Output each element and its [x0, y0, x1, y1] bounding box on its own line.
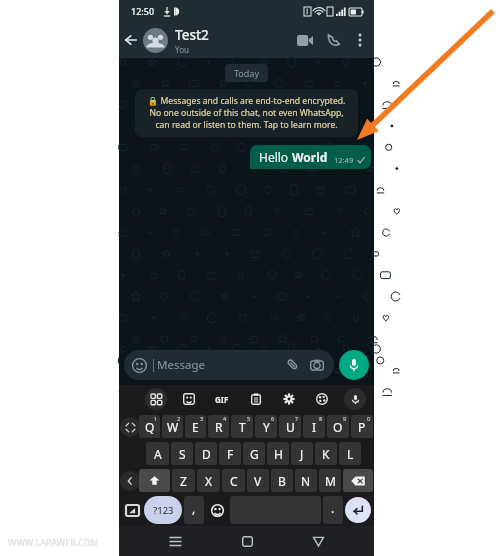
staticText: 3	[200, 415, 204, 422]
staticText: Y	[263, 419, 270, 435]
button[interactable]: I	[303, 415, 325, 438]
staticText: 9	[343, 415, 347, 422]
staticText: H	[274, 446, 283, 462]
button[interactable]: Enter	[345, 497, 371, 523]
staticText: D	[202, 446, 211, 462]
button[interactable]: U	[279, 415, 301, 438]
staticText: Test2	[175, 26, 209, 44]
staticText: J	[300, 446, 304, 462]
staticText: Today	[234, 67, 259, 79]
button[interactable]: Z	[172, 469, 195, 492]
button[interactable]: palette	[311, 388, 333, 410]
button[interactable]: Keyboard mode	[122, 500, 142, 520]
button[interactable]: Shift	[139, 469, 170, 492]
button[interactable]: C	[222, 469, 245, 492]
button[interactable]: X	[197, 469, 220, 492]
staticText: ?123	[153, 504, 174, 517]
button[interactable]: W	[162, 415, 183, 438]
staticText: I	[312, 419, 317, 435]
button[interactable]: Emoji	[206, 499, 228, 521]
staticText: 5	[247, 415, 251, 422]
button[interactable]: clip	[245, 388, 267, 410]
button[interactable]: gear	[278, 388, 300, 410]
staticText: 1	[154, 415, 158, 422]
staticText: GIF	[215, 394, 229, 405]
button[interactable]: grid	[145, 388, 167, 410]
button[interactable]: E	[185, 415, 206, 438]
button[interactable]: A	[146, 442, 169, 465]
button[interactable]: Delete	[343, 469, 373, 492]
button[interactable]: Message	[124, 350, 334, 380]
button[interactable]: Back	[119, 22, 143, 58]
button[interactable]: T	[231, 415, 253, 438]
button[interactable]: J	[291, 442, 313, 465]
staticText: 0	[367, 415, 371, 422]
staticText: R	[215, 419, 223, 435]
button[interactable]: ,	[184, 496, 204, 524]
staticText: B	[278, 473, 286, 489]
staticText: You	[175, 44, 189, 55]
button[interactable]: P	[351, 415, 373, 438]
staticText: L	[347, 446, 354, 462]
staticText: Message	[157, 357, 284, 373]
staticText: 2	[177, 415, 181, 422]
staticText: U	[286, 419, 295, 435]
button[interactable]: Back	[302, 526, 334, 556]
button[interactable]: mic	[344, 388, 366, 410]
staticText: N	[301, 473, 311, 489]
button[interactable]: Hello	[250, 145, 371, 169]
button[interactable]: B	[271, 469, 293, 492]
staticText: ,	[192, 500, 196, 516]
staticText: S	[179, 446, 186, 462]
button[interactable]: Test2	[143, 22, 290, 58]
button[interactable]: Recents	[159, 526, 191, 556]
button[interactable]: K	[315, 442, 337, 465]
staticText: K	[322, 446, 330, 462]
button[interactable]: Home	[231, 526, 263, 556]
staticText: W	[167, 419, 179, 435]
button[interactable]: L	[339, 442, 361, 465]
button[interactable]: R	[208, 415, 229, 438]
button[interactable]: V	[247, 469, 269, 492]
button[interactable]: 🔒 Messages and calls are end-to-end encr…	[135, 89, 358, 137]
button[interactable]: N	[295, 469, 317, 492]
staticText: M	[325, 473, 336, 489]
button[interactable]: .	[323, 496, 343, 524]
button[interactable]: H	[267, 442, 289, 465]
button[interactable]: M	[319, 469, 341, 492]
staticText: P	[358, 419, 366, 435]
button[interactable]: Resize keyboard	[120, 417, 140, 437]
button[interactable]: Q	[139, 415, 160, 438]
staticText: .	[331, 500, 335, 516]
button[interactable]: Y	[255, 415, 277, 438]
button[interactable]: Camera	[308, 356, 326, 374]
button[interactable]: D	[195, 442, 217, 465]
staticText: World	[292, 149, 328, 165]
button[interactable]: ?123	[144, 496, 182, 524]
button[interactable]: Voice message	[339, 350, 369, 380]
staticText: 12:50	[131, 5, 155, 17]
button[interactable]: F	[219, 442, 241, 465]
button[interactable]: Attach	[284, 356, 302, 374]
button[interactable]: S	[171, 442, 193, 465]
staticText: O	[333, 419, 343, 435]
staticText: T	[239, 419, 246, 435]
button[interactable]: Voice call	[320, 22, 348, 58]
staticText: 🔒 Messages and calls are end-to-end encr…	[144, 95, 349, 131]
button[interactable]: Previous	[120, 471, 140, 491]
staticText: E	[192, 419, 199, 435]
button[interactable]: gif	[211, 388, 233, 410]
button[interactable]: More options	[348, 22, 372, 58]
staticText: WWW.LAPAWEB.COM	[8, 536, 99, 548]
button[interactable]: O	[327, 415, 349, 438]
staticText: Q	[145, 419, 155, 435]
button[interactable]: G	[243, 442, 265, 465]
staticText: 12:49	[334, 155, 354, 165]
button[interactable]: sticker	[178, 388, 200, 410]
button[interactable]: Video call	[290, 22, 320, 58]
staticText: A	[154, 446, 162, 462]
staticText: 6	[271, 415, 275, 422]
staticText: F	[227, 446, 234, 462]
staticText: V	[254, 473, 262, 489]
